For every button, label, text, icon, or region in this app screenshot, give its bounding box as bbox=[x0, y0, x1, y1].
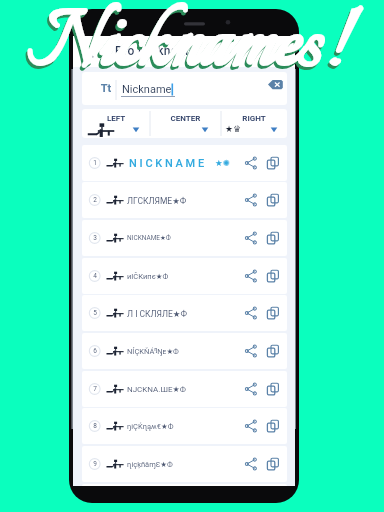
staticText: иІĈКипє★Ф bbox=[127, 272, 169, 281]
staticText: Nicknames! bbox=[27, 0, 349, 109]
staticText: ŋіÇЌɳąʍ€★Ф bbox=[127, 422, 174, 431]
staticText: NÍÇKŇÁᵑŊᴇ★Ф bbox=[127, 347, 179, 356]
button[interactable]: 8 bbox=[82, 408, 287, 444]
button[interactable]: RIGHT bbox=[221, 109, 287, 138]
staticText: 4 bbox=[87, 272, 103, 281]
staticText: ЛГСКЛЯМЕ★Ф bbox=[127, 196, 187, 206]
staticText: NЈCKNА.ШЕ★Ф bbox=[127, 385, 186, 394]
staticText: 9 bbox=[87, 460, 103, 469]
button[interactable]: Clear text bbox=[268, 79, 287, 98]
button[interactable]: Back bbox=[81, 42, 100, 61]
staticText: Nicknames! bbox=[29, 0, 351, 106]
button[interactable]: 2 bbox=[82, 182, 287, 218]
staticText: CENTER bbox=[150, 114, 221, 126]
staticText: NICKNAME★Ф bbox=[127, 234, 171, 242]
staticText: ɳіçķñȃɱƐ★Ф bbox=[127, 460, 173, 469]
button[interactable]: CENTER bbox=[150, 109, 221, 138]
staticText: 5 bbox=[87, 309, 103, 318]
staticText: 7 bbox=[87, 385, 103, 394]
button[interactable]: 9 bbox=[82, 446, 287, 482]
staticText: 3 bbox=[87, 234, 103, 243]
button[interactable]: 6 bbox=[82, 333, 287, 369]
button[interactable]: 3 bbox=[82, 220, 287, 256]
staticText: ★♛ bbox=[225, 124, 242, 134]
staticText: 6 bbox=[87, 347, 103, 356]
button[interactable]: 4 bbox=[82, 258, 287, 294]
staticText: N I C K N A M E bbox=[129, 157, 205, 170]
button[interactable]: 7 bbox=[82, 371, 287, 407]
button[interactable]: 5 bbox=[82, 295, 287, 331]
staticText: Pro Nickname bbox=[115, 44, 196, 58]
staticText: ★✺ bbox=[215, 158, 230, 168]
staticText: 2 bbox=[87, 196, 103, 205]
staticText: LEFT bbox=[82, 114, 150, 126]
staticText: RIGHT bbox=[221, 114, 287, 126]
staticText: 8 bbox=[87, 422, 103, 431]
staticText: Tt bbox=[99, 82, 113, 96]
staticText: Nickname bbox=[122, 83, 172, 96]
button[interactable]: LEFT bbox=[82, 109, 150, 138]
button[interactable]: 1 bbox=[82, 145, 287, 181]
button[interactable]: Tt bbox=[82, 72, 287, 105]
staticText: Nicknames! bbox=[27, 0, 349, 109]
staticText: Nicknames! bbox=[29, 0, 351, 106]
staticText: 1 bbox=[87, 159, 103, 168]
staticText: Л І СКЛЯЛЕ★Ф bbox=[127, 309, 188, 319]
